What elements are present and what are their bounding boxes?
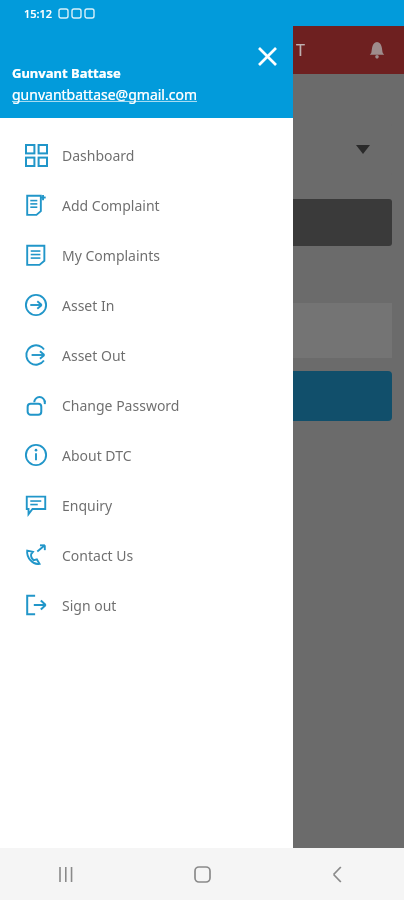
staticText: gunvantbattase@gmail.com	[12, 85, 198, 104]
staticText: About DTC	[62, 446, 132, 465]
staticText: T	[296, 39, 305, 61]
staticText: Contact Us	[62, 546, 134, 565]
button[interactable]: Asset In	[0, 280, 293, 330]
staticText: Asset In	[62, 296, 115, 315]
button[interactable]	[10, 199, 392, 246]
staticText: My Complaints	[62, 246, 160, 265]
button[interactable]: Sign out	[0, 580, 293, 630]
staticText: Add Complaint	[62, 196, 160, 215]
button[interactable]: Change Password	[0, 380, 293, 430]
staticText: Dashboard	[62, 146, 135, 165]
button[interactable]: Notifications	[362, 35, 392, 65]
button[interactable]: Back	[313, 850, 361, 898]
button[interactable]	[14, 122, 392, 177]
button[interactable]	[10, 371, 392, 421]
button[interactable]: Recents	[43, 850, 91, 898]
button[interactable]: Add Complaint	[0, 180, 293, 230]
button[interactable]: My Complaints	[0, 230, 293, 280]
button[interactable]: About DTC	[0, 430, 293, 480]
button[interactable]: Close drawer	[249, 38, 285, 74]
button[interactable]: Contact Us	[0, 530, 293, 580]
button[interactable]: Dashboard	[0, 130, 293, 180]
staticText: Gunvant Battase	[12, 64, 121, 82]
staticText: Asset Out	[62, 346, 126, 365]
staticText: 15:12	[24, 6, 53, 21]
staticText: Change Password	[62, 396, 180, 415]
staticText: Sign out	[62, 596, 117, 615]
staticText: Enquiry	[62, 496, 113, 515]
button[interactable]: Enquiry	[0, 480, 293, 530]
button[interactable]: Asset Out	[0, 330, 293, 380]
button[interactable]: Home	[178, 850, 226, 898]
